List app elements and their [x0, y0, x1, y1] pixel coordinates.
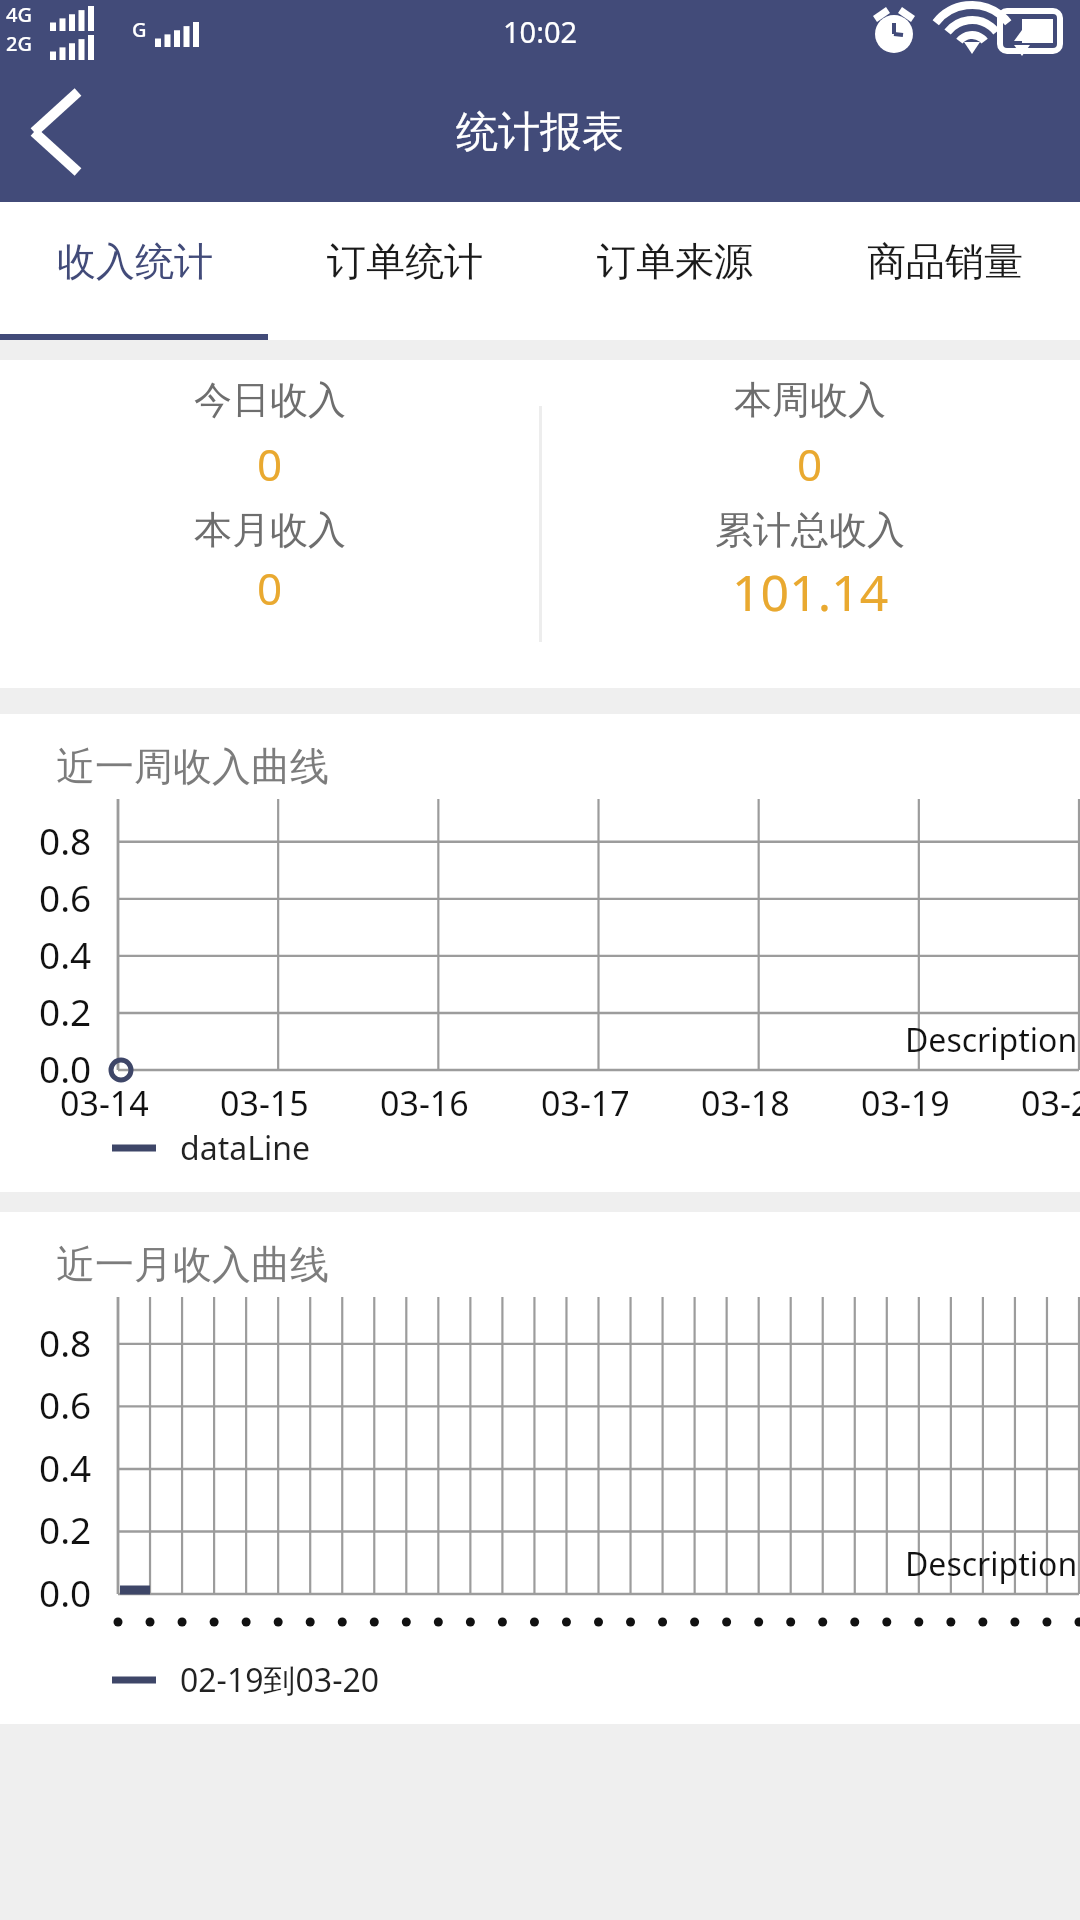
staticText: 统计报表 — [456, 106, 624, 159]
staticText: 本周收入 — [734, 376, 886, 424]
staticText: 0.6 — [39, 872, 92, 922]
button[interactable]: 收入统计 — [0, 202, 270, 340]
staticText: 近一周收入曲线 — [56, 742, 329, 791]
staticText: 10:02 — [503, 12, 578, 51]
staticText: Description — [905, 1542, 1078, 1586]
staticText: 02-19到03-20 — [180, 1658, 380, 1702]
staticText: 0 — [257, 558, 283, 618]
staticText: 0.4 — [39, 929, 92, 979]
staticText: 本月收入 — [194, 506, 346, 554]
button[interactable]: 商品销量 — [810, 202, 1080, 340]
button[interactable]: 订单来源 — [540, 202, 810, 340]
staticText: G — [132, 16, 147, 43]
staticText: 0.0 — [39, 1043, 92, 1093]
staticText: 0.6 — [39, 1379, 92, 1429]
button[interactable]: 今日收入 — [0, 360, 540, 688]
button[interactable]: 订单统计 — [270, 202, 540, 340]
staticText: 4G — [6, 1, 32, 28]
staticText: dataLine — [180, 1126, 310, 1170]
staticText: 近一月收入曲线 — [56, 1240, 329, 1289]
button[interactable]: Back — [0, 70, 120, 194]
staticText: 101.14 — [732, 558, 889, 626]
staticText: 订单来源 — [597, 237, 753, 286]
staticText: 0.8 — [39, 815, 92, 865]
staticText: 03-18 — [701, 1080, 790, 1126]
staticText: 商品销量 — [867, 237, 1023, 286]
staticText: 0.0 — [39, 1567, 92, 1617]
staticText: 03-19 — [861, 1080, 950, 1126]
staticText: 03-16 — [380, 1080, 469, 1126]
staticText: 03-15 — [220, 1080, 309, 1126]
staticText: 2G — [6, 30, 32, 57]
staticText: 0 — [257, 434, 283, 494]
staticText: 订单统计 — [327, 237, 483, 286]
staticText: 03-17 — [541, 1080, 630, 1126]
staticText: 0.2 — [39, 1504, 92, 1554]
staticText: 0.8 — [39, 1317, 92, 1367]
button[interactable]: 本周收入 — [540, 360, 1080, 688]
staticText: 03-14 — [60, 1080, 149, 1126]
staticText: 0.4 — [39, 1442, 92, 1492]
staticText: 03-20 — [1021, 1080, 1080, 1126]
staticText: 累计总收入 — [715, 506, 905, 554]
staticText: 0.2 — [39, 986, 92, 1036]
staticText: 今日收入 — [194, 376, 346, 424]
staticText: 0 — [797, 434, 823, 494]
staticText: 收入统计 — [57, 237, 213, 286]
staticText: Description — [905, 1018, 1078, 1062]
